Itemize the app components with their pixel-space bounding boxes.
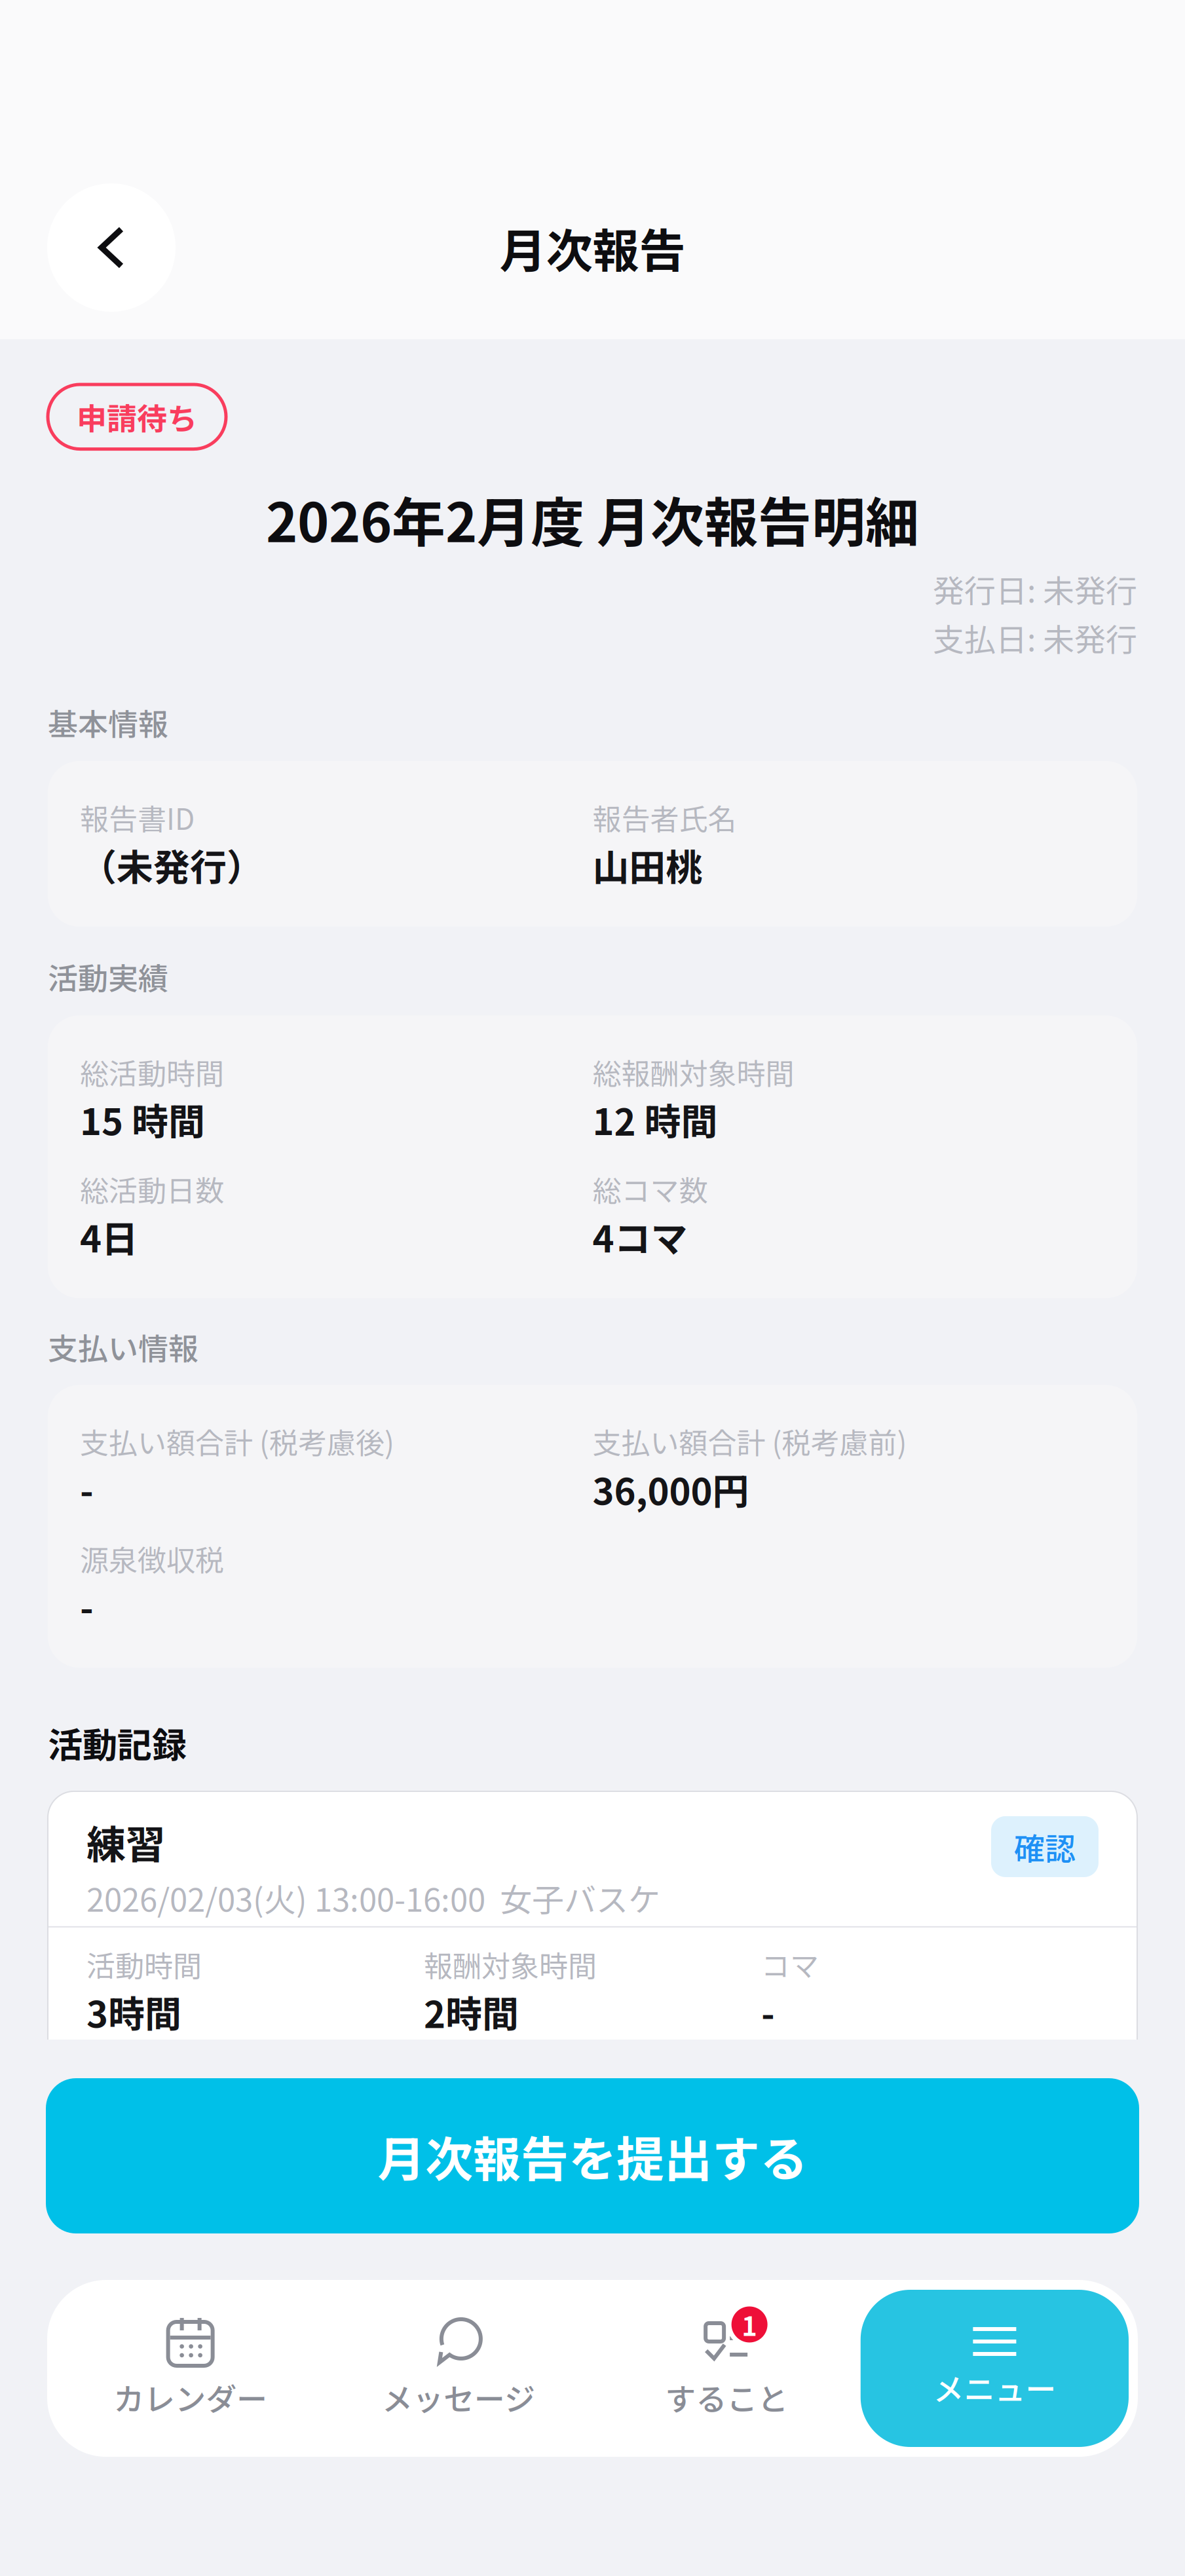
staticText: 活動時間 xyxy=(86,1943,202,1985)
staticText: 12 時間 xyxy=(592,1093,718,1146)
staticText: 4コマ xyxy=(592,1210,687,1263)
staticText: 確認 xyxy=(1014,1824,1076,1869)
staticText: 総活動日数 xyxy=(80,1168,224,1210)
staticText: 3時間 xyxy=(86,1985,181,2038)
staticText: 支払い額合計 (税考慮前) xyxy=(592,1420,907,1462)
staticText: メッセージ xyxy=(382,2375,535,2420)
staticText: 報酬対象時間 xyxy=(424,1943,597,1985)
staticText: 1 xyxy=(742,2305,757,2343)
staticText: - xyxy=(761,1985,775,2038)
staticText: 15 時間 xyxy=(80,1093,205,1146)
staticText: 源泉徴収税 xyxy=(80,1537,224,1579)
button[interactable]: 申請待ち xyxy=(48,384,226,449)
staticText: 支払い情報 xyxy=(48,1325,198,1369)
staticText: 2026/02/03(火) 13:00-16:00 女子バスケ xyxy=(86,1874,660,1921)
button[interactable]: 確認 xyxy=(991,1814,1099,1874)
staticText: 基本情報 xyxy=(48,700,168,744)
button[interactable]: 1 xyxy=(592,2290,861,2447)
staticText: （未発行） xyxy=(80,838,263,891)
staticText: 4日 xyxy=(80,1210,138,1263)
staticText: 支払い額合計 (税考慮後) xyxy=(80,1420,394,1462)
staticText: 報告書ID xyxy=(80,796,195,838)
button[interactable]: カレンダー xyxy=(56,2290,324,2447)
staticText: 報告者氏名 xyxy=(592,796,737,838)
staticText: 2時間 xyxy=(424,1985,519,2038)
staticText: 練習 xyxy=(86,1814,165,1870)
staticText: 2026年2月度 月次報告明細 xyxy=(266,480,919,558)
button[interactable]: メニュー xyxy=(861,2290,1129,2447)
staticText: 活動実績 xyxy=(48,955,168,998)
staticText: - xyxy=(80,1462,94,1515)
staticText: 36,000円 xyxy=(592,1462,749,1515)
staticText: - xyxy=(80,1579,94,1632)
staticText: 山田桃 xyxy=(592,838,703,891)
staticText: カレンダー xyxy=(113,2375,267,2420)
staticText: 総活動時間 xyxy=(80,1051,224,1093)
staticText: 申請待ち xyxy=(77,395,197,439)
staticText: メニュー xyxy=(933,2365,1056,2410)
button[interactable]: 月次報告を提出する xyxy=(46,2078,1139,2233)
staticText: 発行日: 未発行 xyxy=(933,566,1137,612)
staticText: 支払日: 未発行 xyxy=(933,615,1137,660)
staticText: 総報酬対象時間 xyxy=(592,1051,794,1093)
staticText: 月次報告 xyxy=(499,214,686,281)
staticText: 月次報告を提出する xyxy=(377,2121,808,2190)
staticText: 活動記録 xyxy=(48,1717,187,1768)
button[interactable]: 戻る xyxy=(47,183,176,312)
button[interactable]: メッセージ xyxy=(324,2290,592,2447)
staticText: すること xyxy=(665,2375,788,2420)
staticText: コマ xyxy=(761,1943,819,1985)
staticText: 総コマ数 xyxy=(592,1168,708,1210)
